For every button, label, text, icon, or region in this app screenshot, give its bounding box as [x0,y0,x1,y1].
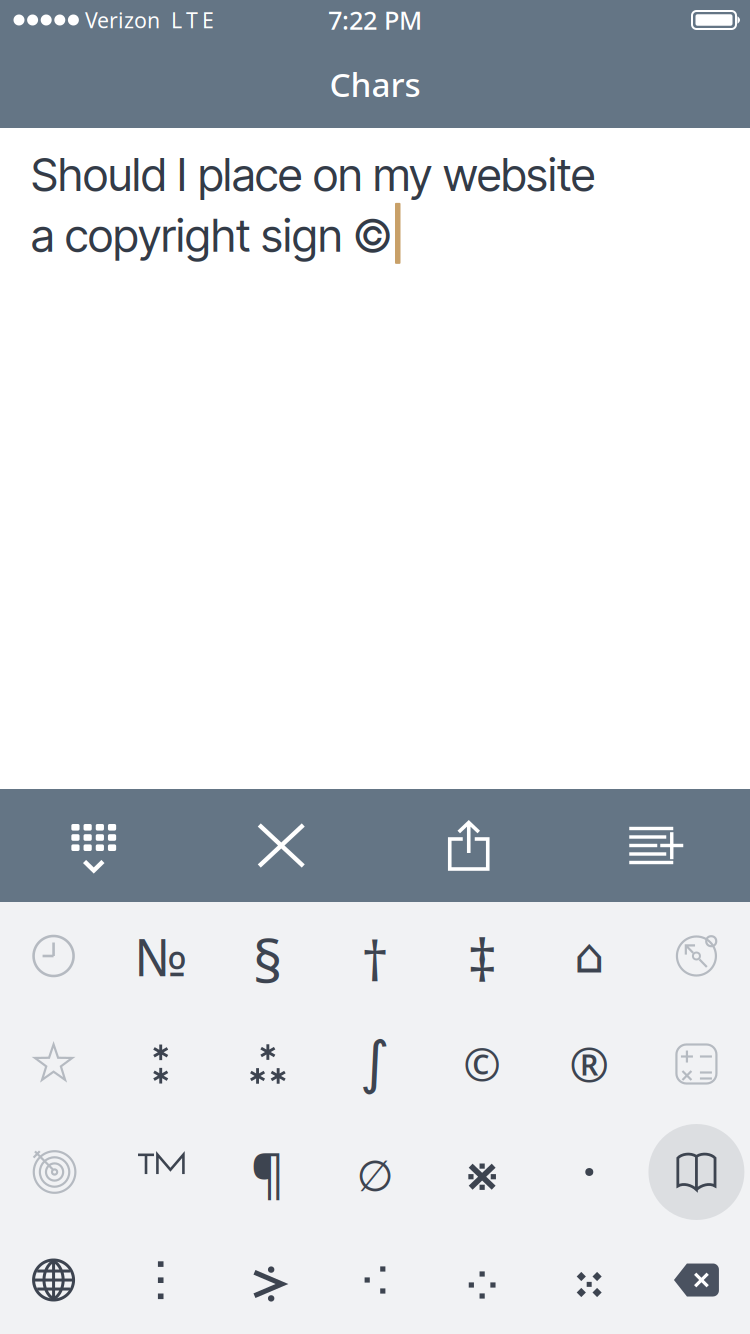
button[interactable]: Clear Text [187,789,375,902]
button[interactable]: Browse [643,902,750,1010]
button[interactable]: ⁑ [107,1010,214,1118]
button[interactable]: Next Keyboard [0,1226,107,1334]
button[interactable]: TM [107,1118,214,1226]
button[interactable]: Recent [0,902,107,1010]
button[interactable]: Picker [0,1118,107,1226]
button[interactable]: ⸖ [214,1226,321,1334]
button[interactable]: ⌂ [536,902,643,1010]
button[interactable]: ⁖ [321,1226,428,1334]
staticText: Verizon [85,6,160,34]
button[interactable]: ∫ [321,1010,428,1118]
staticText: L T E [171,6,214,34]
button[interactable]: ※ [429,1118,536,1226]
button[interactable]: Dictionary [643,1118,750,1226]
button[interactable]: · [536,1118,643,1226]
button[interactable]: Share [375,789,562,902]
button[interactable]: ⁝ [107,1226,214,1334]
button[interactable]: § [214,902,321,1010]
button[interactable]: Math [643,1010,750,1118]
button[interactable]: Add To List [562,789,750,902]
button[interactable]: ® [536,1010,643,1118]
button[interactable]: ‡ [429,902,536,1010]
staticText: ⌂ [574,929,604,983]
button[interactable]: Hide Keyboard [0,789,187,902]
button[interactable]: ⁂ [214,1010,321,1118]
button[interactable]: № [107,902,214,1010]
button[interactable]: Delete [643,1226,750,1334]
button[interactable]: ∅ [321,1118,428,1226]
staticText: © [463,1034,501,1094]
button[interactable]: Favorites [0,1010,107,1118]
staticText: † [361,924,389,996]
button[interactable]: † [321,902,428,1010]
staticText: a copyright sign © [31,208,392,263]
button[interactable]: © [429,1010,536,1118]
button[interactable]: ⁛ [429,1226,536,1334]
staticText: ‡ [467,920,497,998]
staticText: Chars [329,62,420,106]
staticText: ® [569,1032,609,1096]
button[interactable]: ¶ [214,1118,321,1226]
staticText: № [134,921,187,991]
staticText: Should I place on my website [31,147,595,202]
staticText: § [253,921,283,999]
button[interactable]: ⁙ [536,1226,643,1334]
staticText: 7:22 PM [328,3,422,37]
staticText: ∅ [356,1152,393,1200]
staticText: ∫ [360,1030,390,1095]
staticText: ¶ [251,1138,285,1208]
